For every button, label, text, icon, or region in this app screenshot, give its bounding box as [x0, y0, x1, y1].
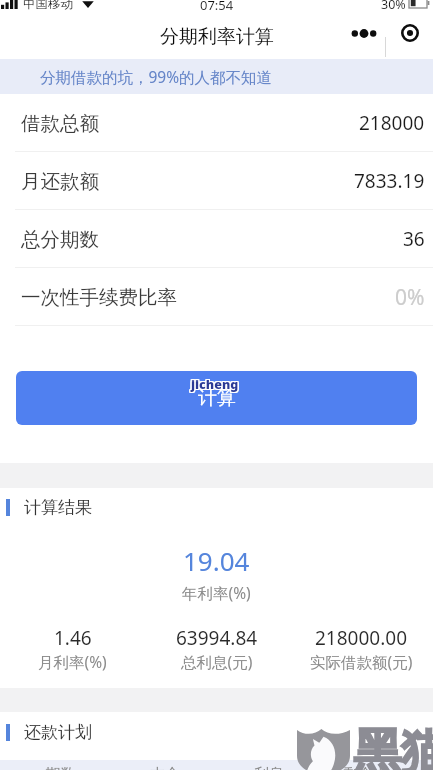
staticText: jicheng: [192, 376, 240, 393]
button[interactable]: Close mini program: [396, 19, 424, 47]
staticText: 36: [403, 226, 425, 252]
staticText: jicheng: [191, 375, 239, 392]
staticText: 黑猫: [353, 722, 433, 770]
button[interactable]: 一次性手续费比率: [0, 268, 433, 326]
staticText: 分期借款的坑，99%的人都不知道: [40, 66, 273, 87]
staticText: jicheng: [192, 377, 240, 394]
staticText: 0%: [395, 283, 425, 312]
staticText: 总分期数: [21, 227, 99, 252]
staticText: 月利率(%): [38, 651, 107, 672]
staticText: 一次性手续费比率: [21, 285, 177, 310]
staticText: 63994.84: [176, 625, 258, 651]
button[interactable]: 218000.00: [289, 625, 433, 672]
staticText: jicheng: [190, 375, 238, 392]
staticText: jicheng: [190, 377, 238, 394]
staticText: 计算结果: [24, 497, 92, 518]
staticText: jicheng: [190, 376, 238, 393]
staticText: jicheng: [191, 377, 239, 394]
staticText: 7833.19: [354, 168, 425, 194]
button[interactable]: 借款总额: [0, 94, 433, 152]
staticText: 218000.00: [315, 625, 408, 651]
staticText: 中国移动: [23, 0, 73, 10]
button[interactable]: 总分期数: [0, 210, 433, 268]
staticText: 实际借款额(元): [310, 651, 413, 672]
staticText: 30%: [381, 0, 406, 10]
staticText: 年利率(%): [182, 582, 251, 603]
button[interactable]: 1.46: [0, 625, 145, 672]
staticText: 计算: [198, 386, 236, 410]
button[interactable]: More options: [344, 19, 384, 47]
button[interactable]: 计算: [16, 371, 417, 425]
staticText: 分期利率计算: [160, 25, 274, 49]
staticText: 218000: [359, 110, 425, 136]
staticText: jicheng: [191, 376, 239, 393]
staticText: 1.46: [54, 625, 92, 651]
staticText: 剩余本金: [321, 765, 425, 770]
staticText: 利息: [217, 765, 321, 770]
staticText: 本金: [113, 765, 217, 770]
staticText: 期数: [8, 765, 113, 770]
staticText: 总利息(元): [181, 651, 253, 672]
button[interactable]: 分期借款的坑，99%的人都不知道: [0, 59, 433, 94]
staticText: 月还款额: [21, 169, 99, 194]
button[interactable]: 月还款额: [0, 152, 433, 210]
staticText: 07:54: [200, 0, 234, 10]
button[interactable]: 63994.84: [145, 625, 289, 672]
staticText: 19.04: [183, 543, 250, 578]
staticText: 还款计划: [24, 722, 92, 743]
staticText: 借款总额: [21, 111, 99, 136]
staticText: jicheng: [192, 375, 240, 392]
